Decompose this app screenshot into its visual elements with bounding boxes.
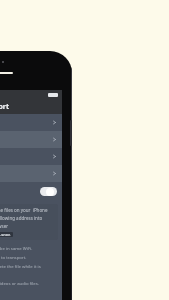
- staticText: your internet browser: [0, 223, 9, 229]
- staticText: • Keep the app open to transport.: [0, 254, 27, 260]
- staticText: • Do not close or delete the file while …: [0, 263, 41, 269]
- staticText: Web Transport: [0, 102, 9, 112]
- button[interactable]: Port Number: [0, 165, 62, 182]
- button[interactable]: Authentication: [0, 148, 62, 165]
- other: Enable Sharing toggle: [40, 187, 57, 196]
- staticText: • Both devices must be in same WiFi.: [0, 245, 33, 251]
- button[interactable]: Enable Sharing: [0, 182, 62, 200]
- button[interactable]: Service Name: [0, 131, 62, 148]
- staticText: • Supports photos, videos or audio files…: [0, 280, 39, 286]
- staticText: You can browse the files on your iPhone: [0, 207, 48, 213]
- button[interactable]: http://192.168.1.24:8080: [0, 233, 11, 236]
- staticText: http://192.168.1.24:8080: [0, 233, 11, 236]
- button[interactable]: Transfer Mode: [0, 114, 62, 131]
- staticText: by entering the following address into: [0, 215, 43, 221]
